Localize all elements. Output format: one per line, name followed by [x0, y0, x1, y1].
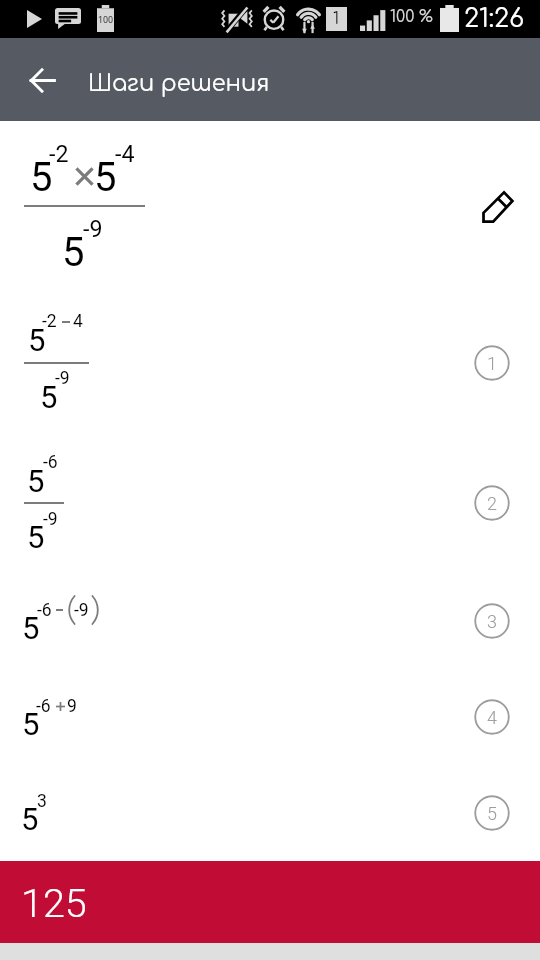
staticText: 1 [333, 10, 340, 28]
button[interactable]: 1 [474, 345, 510, 381]
staticText: -9 [55, 368, 70, 389]
staticText: 2 [487, 493, 497, 514]
button[interactable] [0, 756, 540, 861]
staticText: 100 % [390, 8, 433, 26]
staticText: 5 [487, 803, 497, 824]
button[interactable] [0, 121, 540, 282]
button[interactable] [0, 423, 540, 564]
staticText: 5 [62, 229, 85, 276]
staticText: 100 [98, 15, 115, 26]
staticText: -9 [74, 600, 89, 621]
staticText: 5 [40, 379, 58, 415]
button[interactable] [0, 660, 540, 756]
staticText: 5 [22, 706, 40, 742]
staticText: -6 [43, 452, 58, 473]
staticText: 5 [21, 801, 39, 837]
button[interactable] [0, 282, 540, 423]
staticText: 1 [487, 353, 497, 374]
staticText: 5 [27, 463, 45, 499]
staticText: 3 [37, 791, 47, 812]
staticText: 9 [67, 696, 77, 717]
staticText: -9 [83, 215, 103, 242]
button[interactable]: Back [18, 56, 66, 104]
button[interactable] [0, 861, 540, 943]
staticText: -4 [115, 140, 135, 167]
button[interactable]: 4 [474, 699, 510, 735]
button[interactable] [0, 564, 540, 660]
button[interactable]: 2 [474, 485, 510, 521]
button[interactable]: 5 [474, 795, 510, 831]
staticText: 21:26 [464, 4, 525, 33]
staticText: 3 [487, 611, 497, 632]
staticText: 5 [22, 610, 40, 646]
button[interactable]: 3 [474, 603, 510, 639]
staticText: -2 [49, 140, 69, 167]
staticText: -9 [43, 509, 58, 530]
staticText: 4 [487, 707, 497, 728]
staticText: 4 [73, 311, 83, 332]
button[interactable]: Edit [478, 188, 516, 226]
staticText: 5 [94, 154, 117, 201]
staticText: 125 [21, 880, 87, 926]
staticText: 5 [30, 154, 53, 201]
staticText: 5 [27, 519, 45, 555]
staticText: -2 [42, 311, 57, 332]
staticText: Шаги решения [88, 71, 270, 96]
staticText: -6 [37, 600, 52, 621]
staticText: 5 [28, 322, 46, 358]
staticText: -6 [36, 696, 51, 717]
